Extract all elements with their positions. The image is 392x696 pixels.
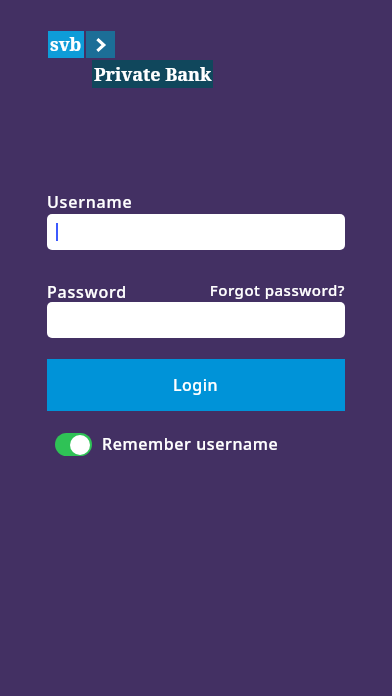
staticText: Private Bank	[94, 62, 212, 87]
staticText: Remember username	[102, 433, 279, 455]
staticText: Password	[47, 281, 127, 303]
staticText: Login	[173, 374, 219, 396]
button[interactable]: Remember username toggle	[55, 430, 279, 458]
other: Remember username toggle	[55, 433, 92, 456]
button[interactable]: Login	[47, 359, 345, 411]
staticText: Forgot password?	[209, 280, 345, 300]
staticText: svb	[50, 32, 82, 57]
staticText: Username	[47, 191, 133, 213]
button[interactable]	[47, 302, 345, 338]
button[interactable]	[47, 214, 345, 250]
button[interactable]: Forgot password?	[205, 280, 345, 300]
